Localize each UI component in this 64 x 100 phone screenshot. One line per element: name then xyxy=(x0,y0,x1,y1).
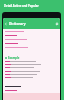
button[interactable]: Back xyxy=(4,22,8,26)
staticText: Dictionary xyxy=(9,22,26,26)
button[interactable]: Bookmark xyxy=(55,22,59,26)
staticText: Detail Active and Popular xyxy=(4,4,39,8)
staticText: Example xyxy=(8,56,20,60)
